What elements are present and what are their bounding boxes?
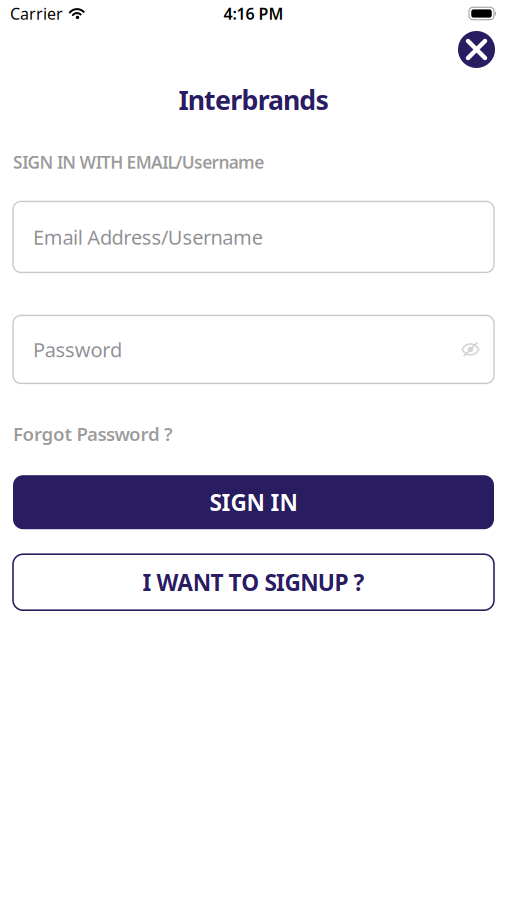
staticText: Carrier (10, 3, 63, 24)
staticText: Email Address/Username (33, 224, 263, 250)
textField[interactable]: Email Address/Username (13, 201, 494, 272)
staticText: Forgot Password ? (13, 421, 173, 446)
staticText: SIGN IN WITH EMAIL/Username (13, 150, 264, 173)
staticText: Password (33, 336, 122, 363)
staticText: Interbrands (178, 82, 328, 117)
staticText: 4:16 PM (223, 3, 283, 24)
button[interactable]: SIGN IN (13, 475, 494, 529)
textField[interactable]: Password (13, 315, 494, 383)
staticText: SIGN IN (209, 487, 297, 517)
staticText: I WANT TO SIGNUP ? (142, 567, 365, 597)
button[interactable]: Show password (461, 342, 480, 356)
button[interactable]: I WANT TO SIGNUP ? (13, 554, 494, 610)
button[interactable]: Close (458, 31, 495, 68)
button[interactable]: Forgot Password ? (13, 421, 173, 446)
